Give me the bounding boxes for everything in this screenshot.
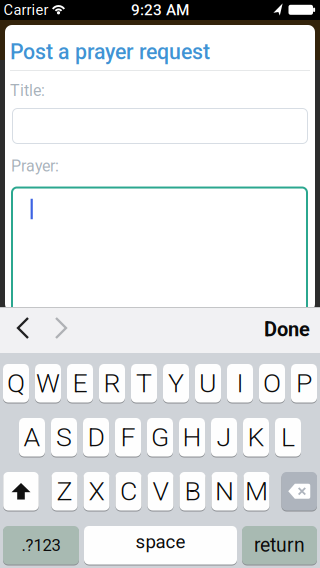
staticText: Y	[168, 368, 184, 399]
button[interactable]: F	[115, 417, 141, 458]
button[interactable]: J	[211, 417, 237, 458]
button[interactable]: A	[19, 417, 45, 458]
button[interactable]: Q	[3, 363, 29, 404]
staticText: N	[215, 476, 234, 507]
button[interactable]: M	[243, 471, 269, 512]
button[interactable]: C	[115, 471, 141, 512]
button[interactable]: R	[99, 363, 125, 404]
button[interactable]: W	[35, 363, 61, 404]
staticText: W	[36, 368, 60, 399]
button[interactable]: T	[131, 363, 157, 404]
staticText: I	[236, 368, 243, 399]
button[interactable]: O	[259, 363, 285, 404]
staticText: J	[216, 422, 231, 453]
button[interactable]: Next field	[48, 313, 74, 343]
staticText: T	[136, 368, 152, 399]
staticText: .?123	[21, 535, 60, 555]
staticText: X	[88, 476, 104, 507]
staticText: Post a prayer request	[10, 39, 210, 64]
button[interactable]: G	[147, 417, 173, 458]
staticText: return	[254, 534, 305, 557]
staticText: U	[199, 368, 217, 399]
button[interactable]: D	[83, 417, 109, 458]
staticText: Title:	[10, 81, 45, 100]
staticText: R	[103, 368, 120, 399]
button[interactable]: S	[51, 417, 77, 458]
staticText: Prayer:	[11, 157, 59, 175]
staticText: space	[135, 531, 185, 553]
staticText: V	[152, 476, 168, 507]
button[interactable]: N	[211, 471, 237, 512]
button[interactable]: I	[227, 363, 253, 404]
staticText: B	[184, 476, 200, 507]
button[interactable]: P	[291, 363, 317, 404]
staticText: Carrier	[3, 1, 48, 19]
button[interactable]: B	[179, 471, 205, 512]
button[interactable]: Previous field	[10, 313, 36, 343]
staticText: C	[120, 476, 137, 507]
button[interactable]: return	[242, 525, 317, 566]
staticText: M	[245, 476, 268, 507]
button[interactable]: U	[195, 363, 221, 404]
staticText: P	[296, 368, 312, 399]
button[interactable]: .?123	[3, 525, 79, 566]
staticText: S	[56, 422, 72, 453]
staticText: H	[182, 422, 201, 453]
staticText: Done	[264, 318, 310, 341]
button[interactable]: space	[84, 525, 237, 566]
button[interactable]: L	[275, 417, 301, 458]
staticText: G	[151, 422, 169, 453]
button[interactable]: Z	[51, 471, 77, 512]
button[interactable]: Delete	[281, 471, 317, 512]
staticText: D	[87, 422, 104, 453]
staticText: F	[120, 422, 135, 453]
button[interactable]: V	[147, 471, 173, 512]
staticText: Q	[7, 368, 25, 399]
staticText: K	[247, 422, 264, 453]
staticText: A	[23, 422, 40, 453]
button[interactable]: Y	[163, 363, 189, 404]
staticText: 9:23 AM	[131, 1, 189, 19]
staticText: Z	[56, 476, 72, 507]
staticText: O	[263, 368, 281, 399]
button[interactable]: Done	[220, 306, 310, 352]
button[interactable]: Prayer	[11, 186, 308, 316]
button[interactable]: H	[179, 417, 205, 458]
button[interactable]: Shift	[3, 471, 39, 512]
button[interactable]: E	[67, 363, 93, 404]
button[interactable]: Title	[12, 108, 308, 144]
staticText: E	[72, 368, 87, 399]
button[interactable]: K	[243, 417, 269, 458]
staticText: L	[281, 422, 295, 453]
button[interactable]: X	[83, 471, 109, 512]
